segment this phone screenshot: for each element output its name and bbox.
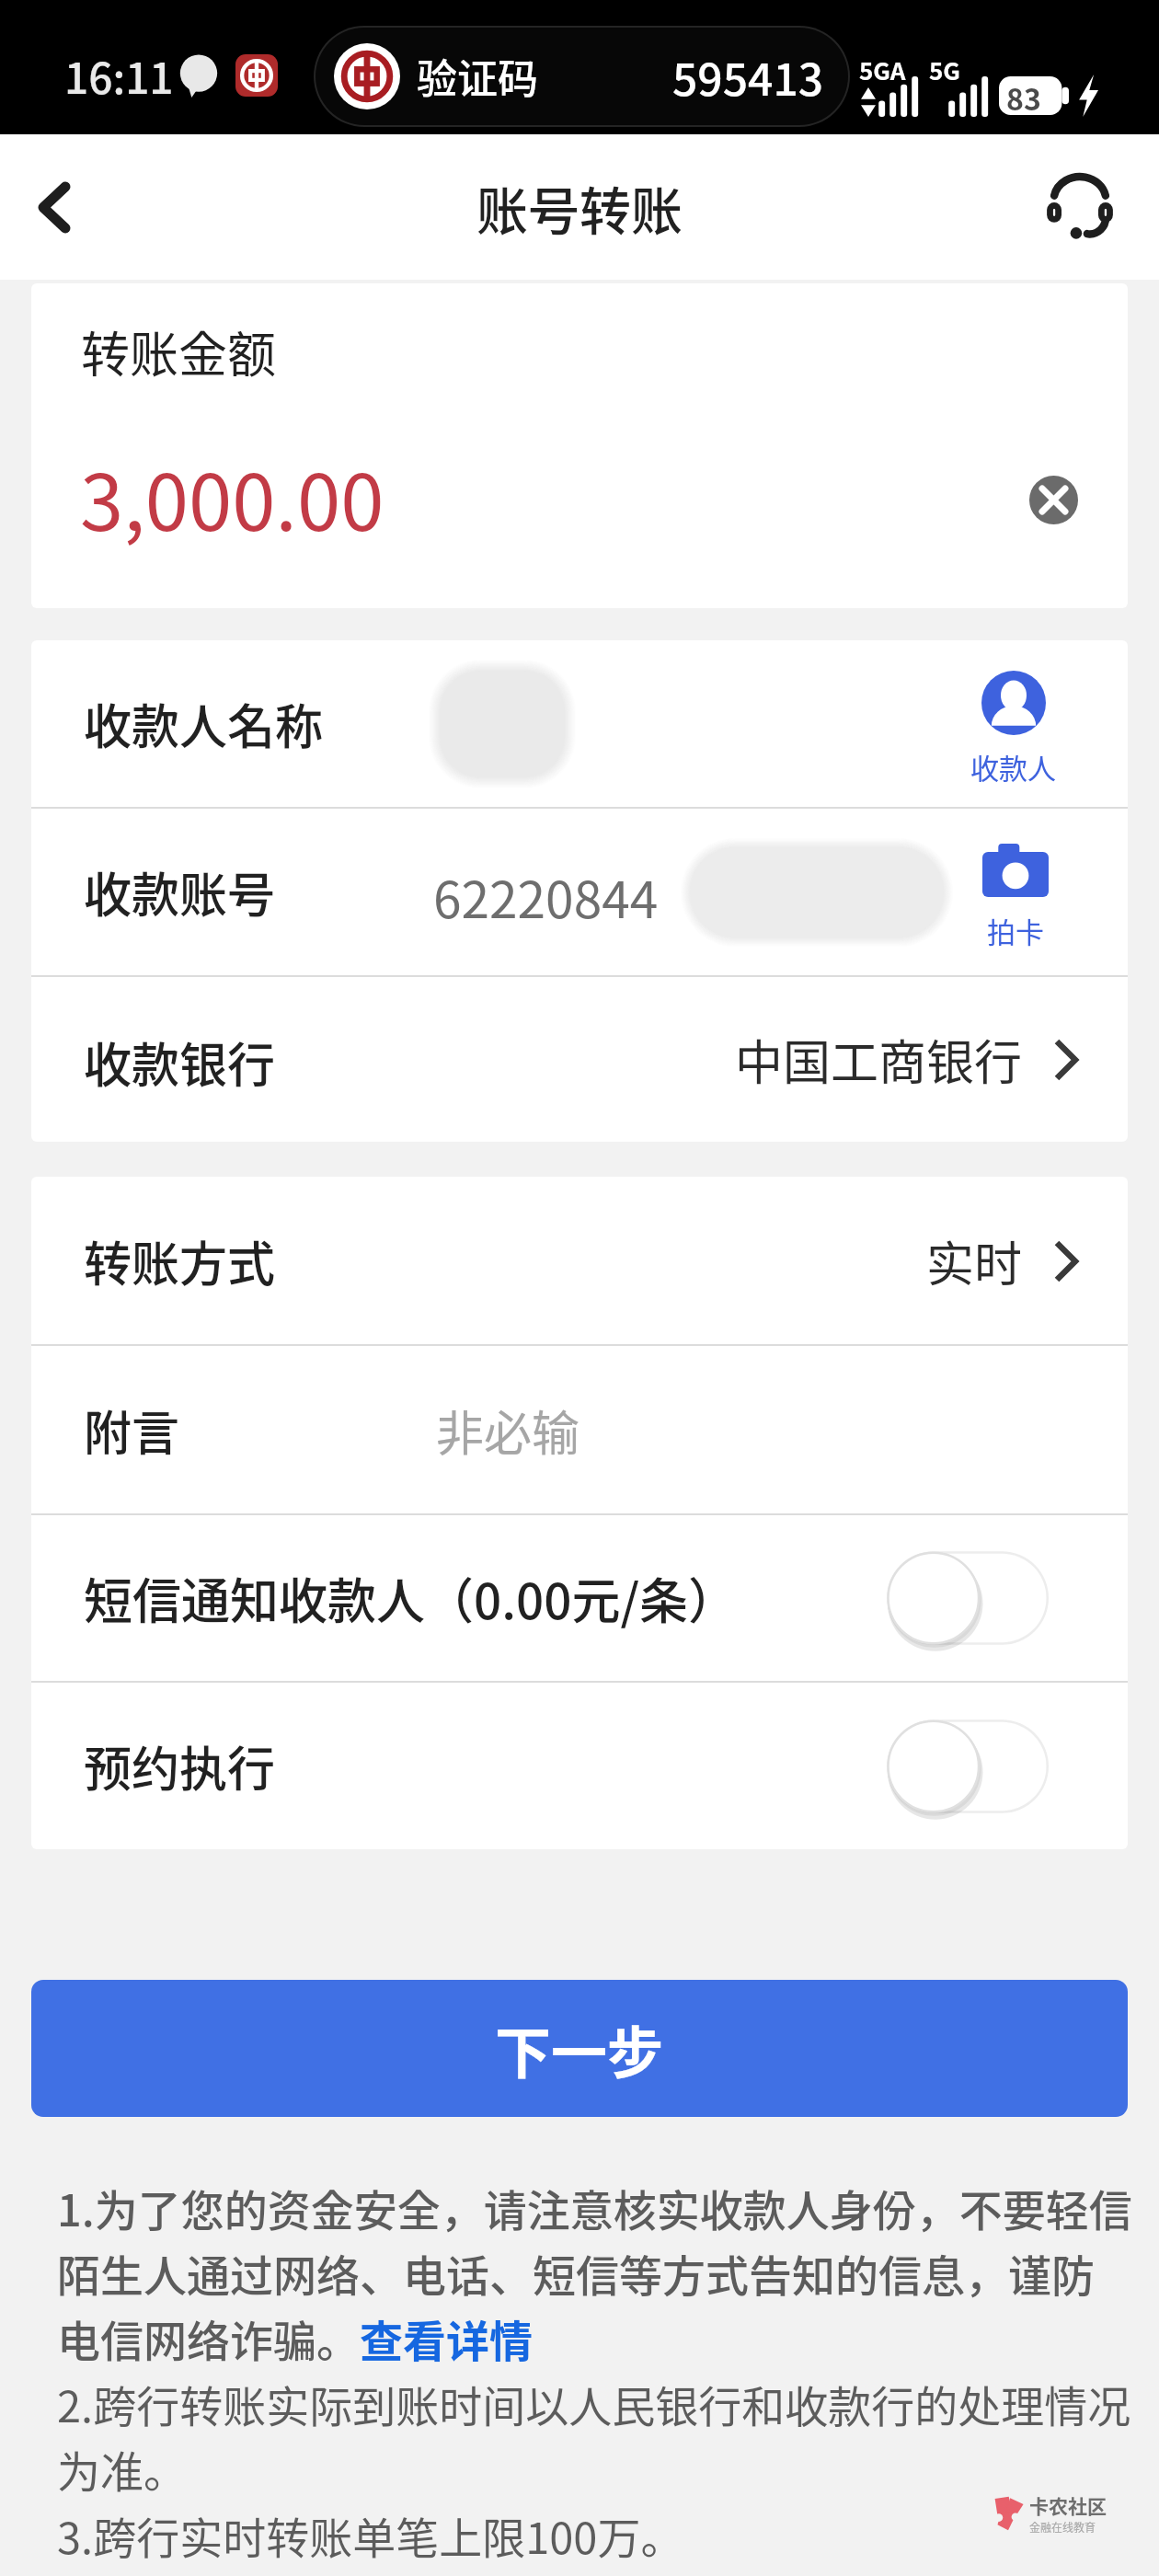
staticText: 金融在线教育: [1029, 2519, 1096, 2535]
staticText: 拍卡: [987, 910, 1044, 951]
button[interactable]: 转账方式: [31, 1177, 1128, 1344]
button[interactable]: 收款账号: [31, 809, 1128, 975]
button[interactable]: 短信通知收款人（0.00元/条）: [31, 1515, 1128, 1681]
staticText: 中国工商银行: [735, 1025, 1023, 1094]
button[interactable]: 拍卡: [982, 844, 1049, 951]
staticText: 转账方式: [84, 1226, 276, 1295]
button[interactable]: 短信通知收款人 开关: [887, 1548, 1049, 1648]
staticText: 短信通知收款人（0.00元/条）: [84, 1563, 738, 1634]
staticText: 3.跨行实时转账单笔上限100万。: [57, 2503, 684, 2566]
staticText: 附言: [84, 1396, 180, 1465]
staticText: 转账金额: [81, 316, 276, 387]
staticText: 595413: [672, 44, 824, 109]
staticText: 验证码: [417, 47, 538, 106]
button[interactable]: 预约执行 开关: [887, 1717, 1049, 1816]
staticText: 下一步: [495, 2008, 664, 2089]
staticText: 账号转账: [476, 170, 683, 245]
button[interactable]: 附言: [31, 1346, 1128, 1513]
staticText: 16:11: [64, 45, 174, 107]
button[interactable]: 收款人: [970, 671, 1056, 788]
button[interactable]: 预约执行: [31, 1683, 1128, 1849]
staticText: 收款人: [970, 746, 1056, 788]
staticText: 5GA: [859, 52, 906, 87]
button[interactable]: Back: [0, 134, 109, 280]
staticText: 2.跨行转账实际到账时间以人民银行和收款行的处理情况为准。: [57, 2372, 1142, 2500]
button[interactable]: 下一步: [31, 1980, 1128, 2117]
staticText: 5G: [929, 52, 960, 87]
staticText: 非必输: [436, 1396, 580, 1465]
staticText: 收款银行: [84, 1028, 276, 1097]
button[interactable]: Clear amount: [1029, 476, 1078, 524]
staticText: 收款账号: [84, 857, 276, 926]
staticText: 预约执行: [84, 1731, 276, 1800]
button[interactable]: Customer service: [1025, 134, 1135, 280]
button[interactable]: 收款人名称: [31, 640, 1128, 807]
staticText: 卡农社区: [1029, 2491, 1107, 2519]
staticText: 62220844: [433, 859, 659, 933]
staticText: 实时: [926, 1226, 1023, 1295]
button[interactable]: 收款银行: [31, 977, 1128, 1142]
staticText: 收款人名称: [84, 689, 324, 758]
staticText: 83: [1006, 76, 1041, 115]
staticText: 3,000.00: [80, 440, 384, 553]
staticText: 1.为了您的资金安全，请注意核实收款人身份，不要轻信 陌生人通过网络、电话、短信…: [57, 2176, 1132, 2369]
